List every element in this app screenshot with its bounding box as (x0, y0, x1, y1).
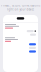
staticText: Private, secure conversations (1, 4, 40, 7)
staticText: right on your device (6, 8, 34, 11)
